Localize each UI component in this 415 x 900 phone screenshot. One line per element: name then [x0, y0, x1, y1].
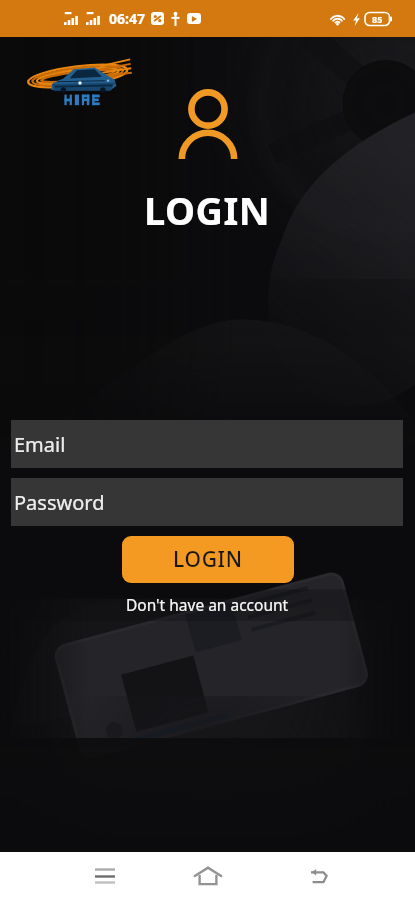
button[interactable]: LOGIN: [122, 536, 294, 583]
staticText: Email: [14, 431, 66, 458]
button[interactable]: Don't have an account: [120, 592, 295, 617]
staticText: LOGIN: [173, 545, 243, 574]
staticText: 06:47: [109, 9, 145, 28]
button[interactable]: Email: [11, 420, 403, 468]
staticText: LOGIN: [144, 184, 271, 236]
button[interactable]: Back: [282, 852, 352, 900]
staticText: 85: [372, 13, 383, 25]
button[interactable]: Password: [11, 478, 403, 526]
button[interactable]: Home: [173, 852, 243, 900]
staticText: Password: [14, 489, 105, 516]
button[interactable]: Recent apps: [70, 852, 140, 900]
